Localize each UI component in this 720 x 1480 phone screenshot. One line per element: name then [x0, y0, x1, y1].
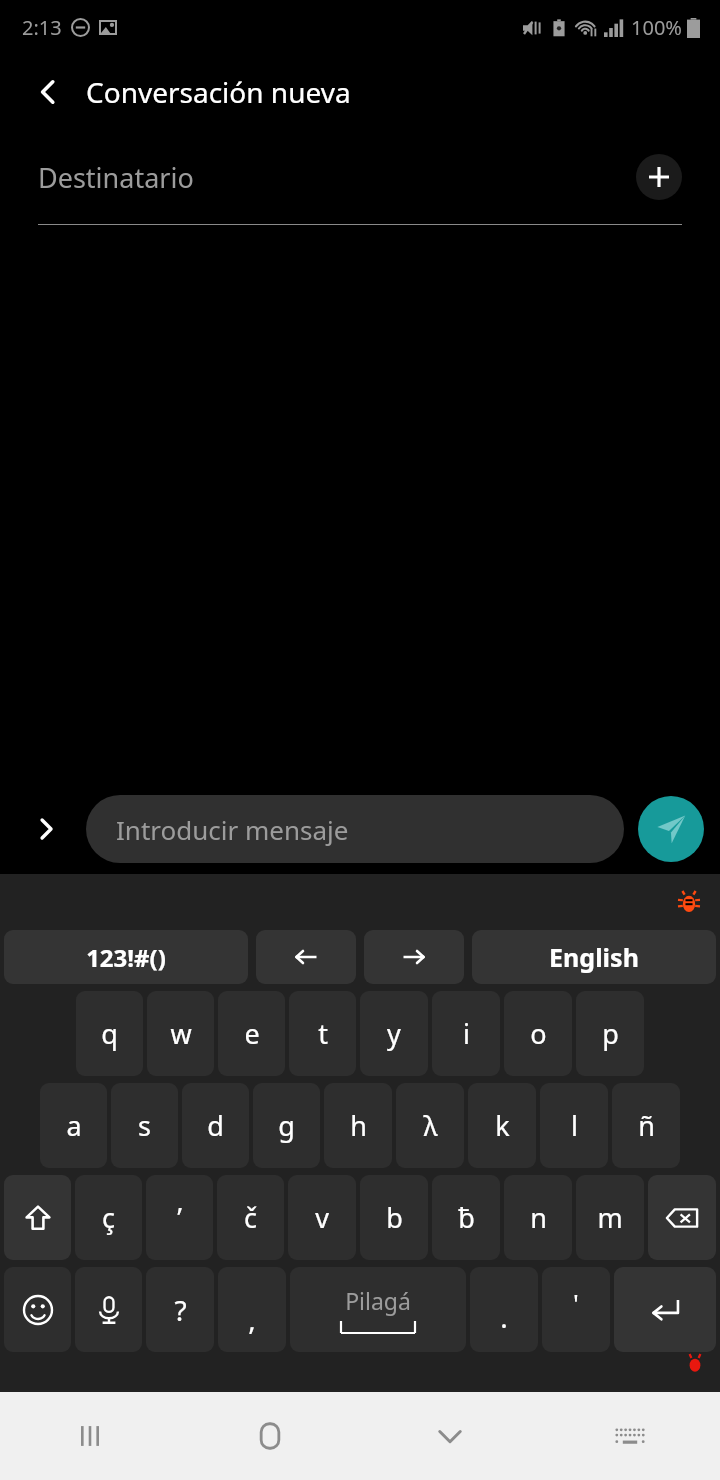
staticText: ,: [248, 1300, 256, 1338]
staticText: v: [315, 1199, 329, 1236]
staticText: Introducir mensaje: [116, 812, 349, 847]
button[interactable]: t: [289, 991, 356, 1076]
button[interactable]: .: [470, 1267, 538, 1352]
staticText: ç: [102, 1199, 115, 1236]
button[interactable]: g: [253, 1083, 320, 1168]
staticText: y: [387, 1015, 401, 1052]
staticText: 100%: [631, 14, 682, 41]
button[interactable]: v: [288, 1175, 356, 1260]
button[interactable]: Home: [180, 1392, 360, 1480]
button[interactable]: p: [576, 991, 644, 1076]
button[interactable]: ’: [146, 1175, 213, 1260]
button[interactable]: Expand options: [24, 807, 68, 851]
button[interactable]: a: [40, 1083, 107, 1168]
button[interactable]: Introducir mensaje: [86, 795, 624, 863]
staticText: w: [170, 1015, 192, 1052]
staticText: g: [278, 1107, 295, 1144]
button[interactable]: λ: [396, 1083, 464, 1168]
button[interactable]: Move cursor left: [256, 930, 356, 984]
button[interactable]: Pilagá: [290, 1267, 466, 1352]
staticText: č: [244, 1199, 257, 1236]
button[interactable]: k: [468, 1083, 536, 1168]
staticText: ƀ: [458, 1199, 475, 1236]
button[interactable]: Emoji: [4, 1267, 71, 1352]
button[interactable]: English: [472, 930, 716, 984]
button[interactable]: y: [360, 991, 428, 1076]
staticText: Pilagá: [345, 1285, 411, 1316]
button[interactable]: ,: [218, 1267, 286, 1352]
button[interactable]: Add recipient: [636, 154, 682, 200]
staticText: Conversación nueva: [86, 73, 351, 111]
staticText: a: [66, 1107, 82, 1144]
staticText: n: [530, 1199, 547, 1236]
button[interactable]: Recents: [0, 1392, 180, 1480]
button[interactable]: h: [324, 1083, 392, 1168]
staticText: i: [463, 1015, 470, 1052]
button[interactable]: Shift: [4, 1175, 71, 1260]
staticText: l: [571, 1107, 578, 1144]
staticText: ': [573, 1285, 579, 1320]
button[interactable]: Backspace: [648, 1175, 716, 1260]
staticText: o: [530, 1015, 547, 1052]
button[interactable]: e: [218, 991, 285, 1076]
staticText: d: [207, 1107, 224, 1144]
staticText: 123!#(): [86, 941, 166, 974]
staticText: p: [602, 1015, 619, 1052]
staticText: English: [549, 940, 639, 974]
staticText: .: [500, 1298, 508, 1336]
button[interactable]: q: [76, 991, 143, 1076]
button[interactable]: s: [111, 1083, 178, 1168]
staticText: h: [350, 1107, 367, 1144]
button[interactable]: i: [432, 991, 500, 1076]
staticText: λ: [423, 1107, 438, 1144]
staticText: q: [101, 1015, 118, 1052]
button[interactable]: ?: [146, 1267, 214, 1352]
button[interactable]: ': [542, 1267, 610, 1352]
staticText: t: [318, 1015, 328, 1052]
staticText: 2:13: [22, 14, 62, 41]
button[interactable]: Move cursor right: [364, 930, 464, 984]
staticText: k: [495, 1107, 510, 1144]
button[interactable]: Hide keyboard: [360, 1392, 540, 1480]
button[interactable]: b: [360, 1175, 428, 1260]
button[interactable]: č: [217, 1175, 284, 1260]
button[interactable]: ƀ: [432, 1175, 500, 1260]
button[interactable]: ç: [75, 1175, 142, 1260]
button[interactable]: Switch keyboard: [540, 1392, 720, 1480]
button[interactable]: d: [182, 1083, 249, 1168]
staticText: e: [244, 1015, 260, 1052]
staticText: s: [138, 1107, 151, 1144]
staticText: ?: [174, 1291, 187, 1329]
button[interactable]: Enter: [614, 1267, 716, 1352]
staticText: ñ: [638, 1107, 655, 1144]
staticText: ’: [177, 1199, 182, 1236]
button[interactable]: o: [504, 991, 572, 1076]
button[interactable]: 123!#(): [4, 930, 248, 984]
staticText: b: [386, 1199, 403, 1236]
button[interactable]: w: [147, 991, 214, 1076]
button[interactable]: Send: [638, 796, 704, 862]
button[interactable]: ñ: [612, 1083, 680, 1168]
staticText: m: [597, 1199, 623, 1236]
button[interactable]: Destinatario: [38, 159, 636, 196]
button[interactable]: Voice input: [75, 1267, 142, 1352]
staticText: Destinatario: [38, 159, 194, 196]
button[interactable]: Back: [26, 70, 70, 114]
other: Debug: [678, 891, 700, 913]
button[interactable]: m: [576, 1175, 644, 1260]
button[interactable]: n: [504, 1175, 572, 1260]
button[interactable]: l: [540, 1083, 608, 1168]
